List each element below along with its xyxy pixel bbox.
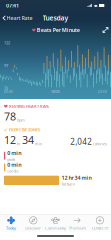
staticText: COVID-19 (92, 225, 108, 231)
staticText: cardio (7, 168, 18, 174)
button[interactable]: Heart Rate (0, 13, 36, 23)
staticText: NOON (51, 90, 59, 94)
staticText: 12 hr 34 min (61, 174, 91, 181)
button[interactable]: Premium (67, 215, 89, 232)
staticText: 72 (4, 86, 8, 91)
staticText: Beats Per Minute (37, 26, 80, 34)
button[interactable]: Today (0, 215, 22, 232)
staticText: 97 (4, 63, 8, 68)
staticText: 0 min (7, 149, 21, 157)
staticText: EXERCISE ZONES (9, 127, 40, 132)
staticText: Premium (69, 225, 86, 231)
staticText: min (35, 141, 42, 146)
staticText: Discover (25, 225, 41, 231)
staticText: calories (93, 141, 107, 146)
button[interactable]: Expand chart (100, 25, 111, 34)
staticText: 34 (22, 133, 34, 147)
staticText: Heart Rate (7, 14, 33, 22)
staticText: 07:41 (6, 2, 19, 9)
staticText: RESTING HEART RATE (9, 103, 49, 109)
button[interactable]: COVID-19 (89, 215, 111, 232)
staticText: 0 min (7, 161, 21, 168)
staticText: fat burn (61, 181, 74, 186)
staticText: 12 (4, 133, 16, 147)
staticText: 00:00 (4, 90, 13, 94)
staticText: Tuesday (42, 14, 68, 22)
staticText: 23:59 (98, 90, 107, 94)
staticText: bpm (17, 117, 25, 123)
staticText: peak (7, 156, 15, 162)
staticText: Today (6, 225, 16, 231)
staticText: Community (45, 225, 66, 231)
staticText: 122 (4, 40, 10, 45)
staticText: 2,042 (70, 136, 92, 147)
staticText: 78 (4, 109, 16, 123)
button[interactable]: Community (44, 215, 67, 232)
button[interactable]: Discover (22, 215, 44, 232)
staticText: hr (17, 141, 21, 146)
